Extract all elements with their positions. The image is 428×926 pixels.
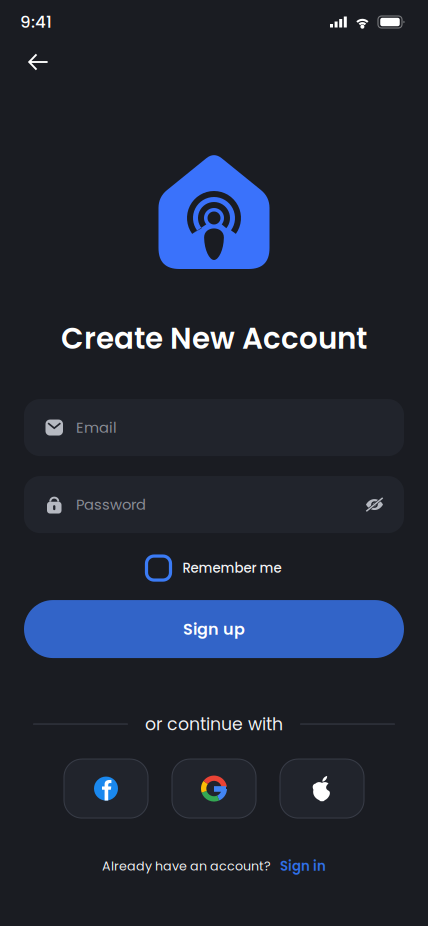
staticText: 9:41 (20, 10, 52, 34)
button[interactable]: Continue with Facebook (64, 759, 148, 818)
staticText: Sign up (183, 618, 245, 640)
staticText: or continue with (145, 712, 283, 736)
staticText: Email (76, 417, 117, 438)
button[interactable]: Back (16, 40, 60, 84)
button[interactable]: Sign in (271, 857, 326, 875)
staticText: Remember me (182, 559, 281, 577)
button[interactable]: Sign up (24, 600, 404, 658)
button[interactable]: Show password (363, 490, 385, 520)
button[interactable]: Continue with Apple (280, 759, 364, 818)
staticText: Sign in (280, 857, 326, 875)
button[interactable]: Remember me (146, 550, 281, 586)
staticText: Create New Account (61, 318, 367, 359)
staticText: Password (76, 494, 146, 515)
button[interactable]: Continue with Google (172, 759, 256, 818)
staticText: Already have an account? (102, 857, 271, 875)
